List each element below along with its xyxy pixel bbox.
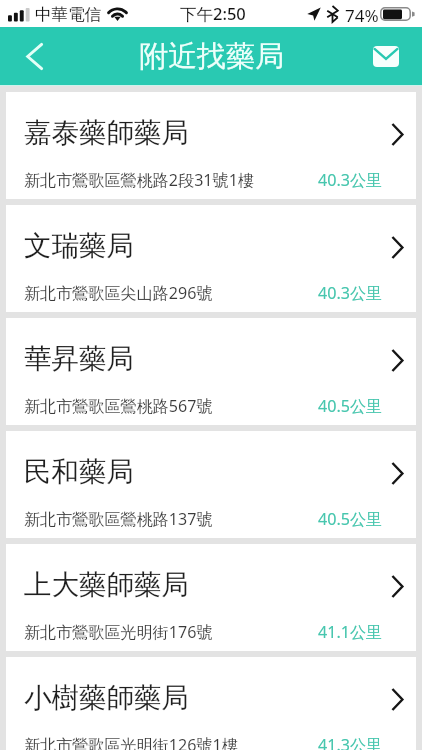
staticText: 40.5公里 [318,508,383,530]
staticText: 華昇藥局 [24,342,134,377]
staticText: 新北市鶯歌區鶯桃路2段31號1樓 [24,169,254,191]
staticText: 74% [345,4,379,27]
staticText: 41.1公里 [318,621,383,643]
button[interactable]: 民和藥局 [6,431,416,538]
staticText: 新北市鶯歌區尖山路296號 [24,282,213,304]
button[interactable]: 上大藥師藥局 [6,544,416,651]
staticText: 文瑞藥局 [24,229,134,264]
staticText: 附近找藥局 [139,38,284,75]
staticText: 40.3公里 [318,169,383,191]
button[interactable]: Mail [360,27,422,85]
staticText: 新北市鶯歌區光明街176號 [24,621,213,643]
staticText: 民和藥局 [24,455,134,490]
staticText: 小樹藥師藥局 [24,681,189,716]
button[interactable]: Back [0,27,62,85]
staticText: 新北市鶯歌區鶯桃路137號 [24,508,213,530]
staticText: 新北市鶯歌區鶯桃路567號 [24,395,213,417]
staticText: 40.3公里 [318,282,383,304]
staticText: 嘉泰藥師藥局 [24,116,189,151]
staticText: 新北市鶯歌區光明街126號1樓 [24,734,238,750]
button[interactable]: 嘉泰藥師藥局 [6,92,416,199]
staticText: 上大藥師藥局 [24,568,189,603]
staticText: 40.5公里 [318,395,383,417]
button[interactable]: 文瑞藥局 [6,205,416,312]
staticText: 中華電信 [35,4,101,25]
staticText: 41.3公里 [318,734,383,750]
button[interactable]: 華昇藥局 [6,318,416,425]
button[interactable]: 小樹藥師藥局 [6,657,416,750]
staticText: 下午2:50 [180,2,246,25]
